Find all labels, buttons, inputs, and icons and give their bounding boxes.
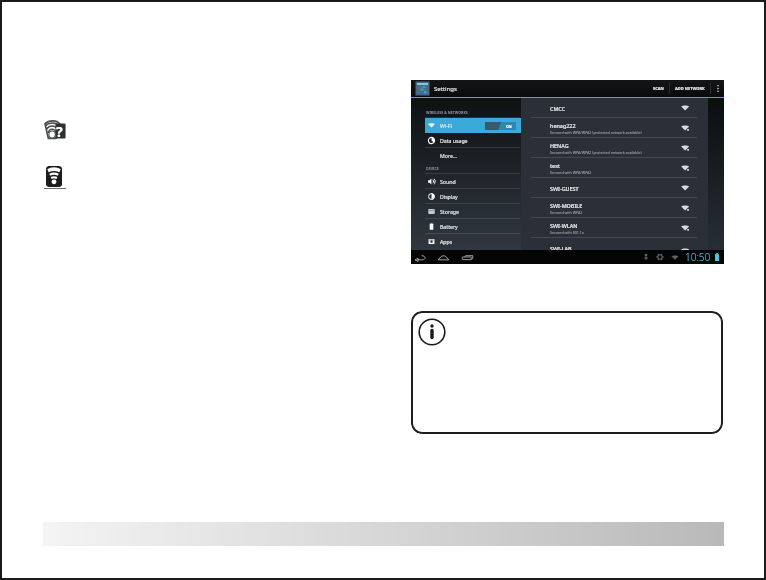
staticText: SWI-MOBILE xyxy=(550,202,583,209)
staticText: More... xyxy=(440,152,457,159)
button[interactable]: Battery xyxy=(425,219,521,234)
staticText: Secured with WPA/WPA2 (protected network… xyxy=(550,150,642,155)
staticText: test xyxy=(550,162,560,169)
staticText: Apps xyxy=(440,238,453,245)
staticText: Wi-Fi xyxy=(440,122,452,129)
staticText: Storage xyxy=(440,208,459,215)
button[interactable]: SWI-GUEST xyxy=(550,178,702,198)
staticText: ? xyxy=(56,122,63,139)
button[interactable]: Recent apps xyxy=(462,253,473,262)
button[interactable]: Back xyxy=(415,253,426,262)
button[interactable]: Wi-Fi xyxy=(425,118,521,133)
button[interactable]: SWI-MOBILE xyxy=(550,198,702,218)
button[interactable]: Home xyxy=(438,253,449,262)
button[interactable]: Display xyxy=(425,189,521,204)
button[interactable]: Sound xyxy=(425,174,521,189)
staticText: Secured with 801.1x xyxy=(550,230,584,235)
staticText: HENAG xyxy=(550,142,569,149)
button[interactable]: HENAG xyxy=(550,138,702,158)
button[interactable]: henag222 xyxy=(550,118,702,138)
button[interactable]: SWI-WLAN xyxy=(550,218,702,238)
staticText: henag222 xyxy=(550,122,576,129)
button[interactable]: More... xyxy=(425,148,521,163)
staticText: Sound xyxy=(440,178,456,185)
staticText: Settings xyxy=(434,85,457,93)
staticText: Display xyxy=(440,193,458,200)
staticText: Battery xyxy=(440,223,458,230)
staticText: Secured with WPA/WPA2 xyxy=(550,170,592,175)
button[interactable]: More options xyxy=(711,80,724,97)
button[interactable]: Apps xyxy=(425,234,521,249)
button[interactable]: CMCC xyxy=(550,98,702,118)
button[interactable]: Storage xyxy=(425,204,521,219)
staticText: ON xyxy=(506,124,512,129)
staticText: 10:50 xyxy=(685,250,711,264)
button[interactable]: Data usage xyxy=(425,133,521,148)
staticText: Secured with WPA/WPA2 (protected network… xyxy=(550,130,642,135)
staticText: SCAN xyxy=(653,86,664,91)
staticText: CMCC xyxy=(550,105,566,112)
button[interactable]: SCAN xyxy=(648,80,669,97)
staticText: SWI-GUEST xyxy=(550,185,579,192)
staticText: Data usage xyxy=(440,137,468,144)
staticText: SWI-WLAN xyxy=(550,222,578,229)
staticText: ADD NETWORK xyxy=(675,86,705,91)
staticText: WIRELESS & NETWORKS xyxy=(426,110,468,115)
button[interactable]: test xyxy=(550,158,702,178)
staticText: Secured with WPA2 xyxy=(550,210,583,215)
staticText: DEVICE xyxy=(426,166,439,171)
staticText: SWI-LAB xyxy=(550,245,572,250)
button[interactable]: ADD NETWORK xyxy=(670,80,710,97)
